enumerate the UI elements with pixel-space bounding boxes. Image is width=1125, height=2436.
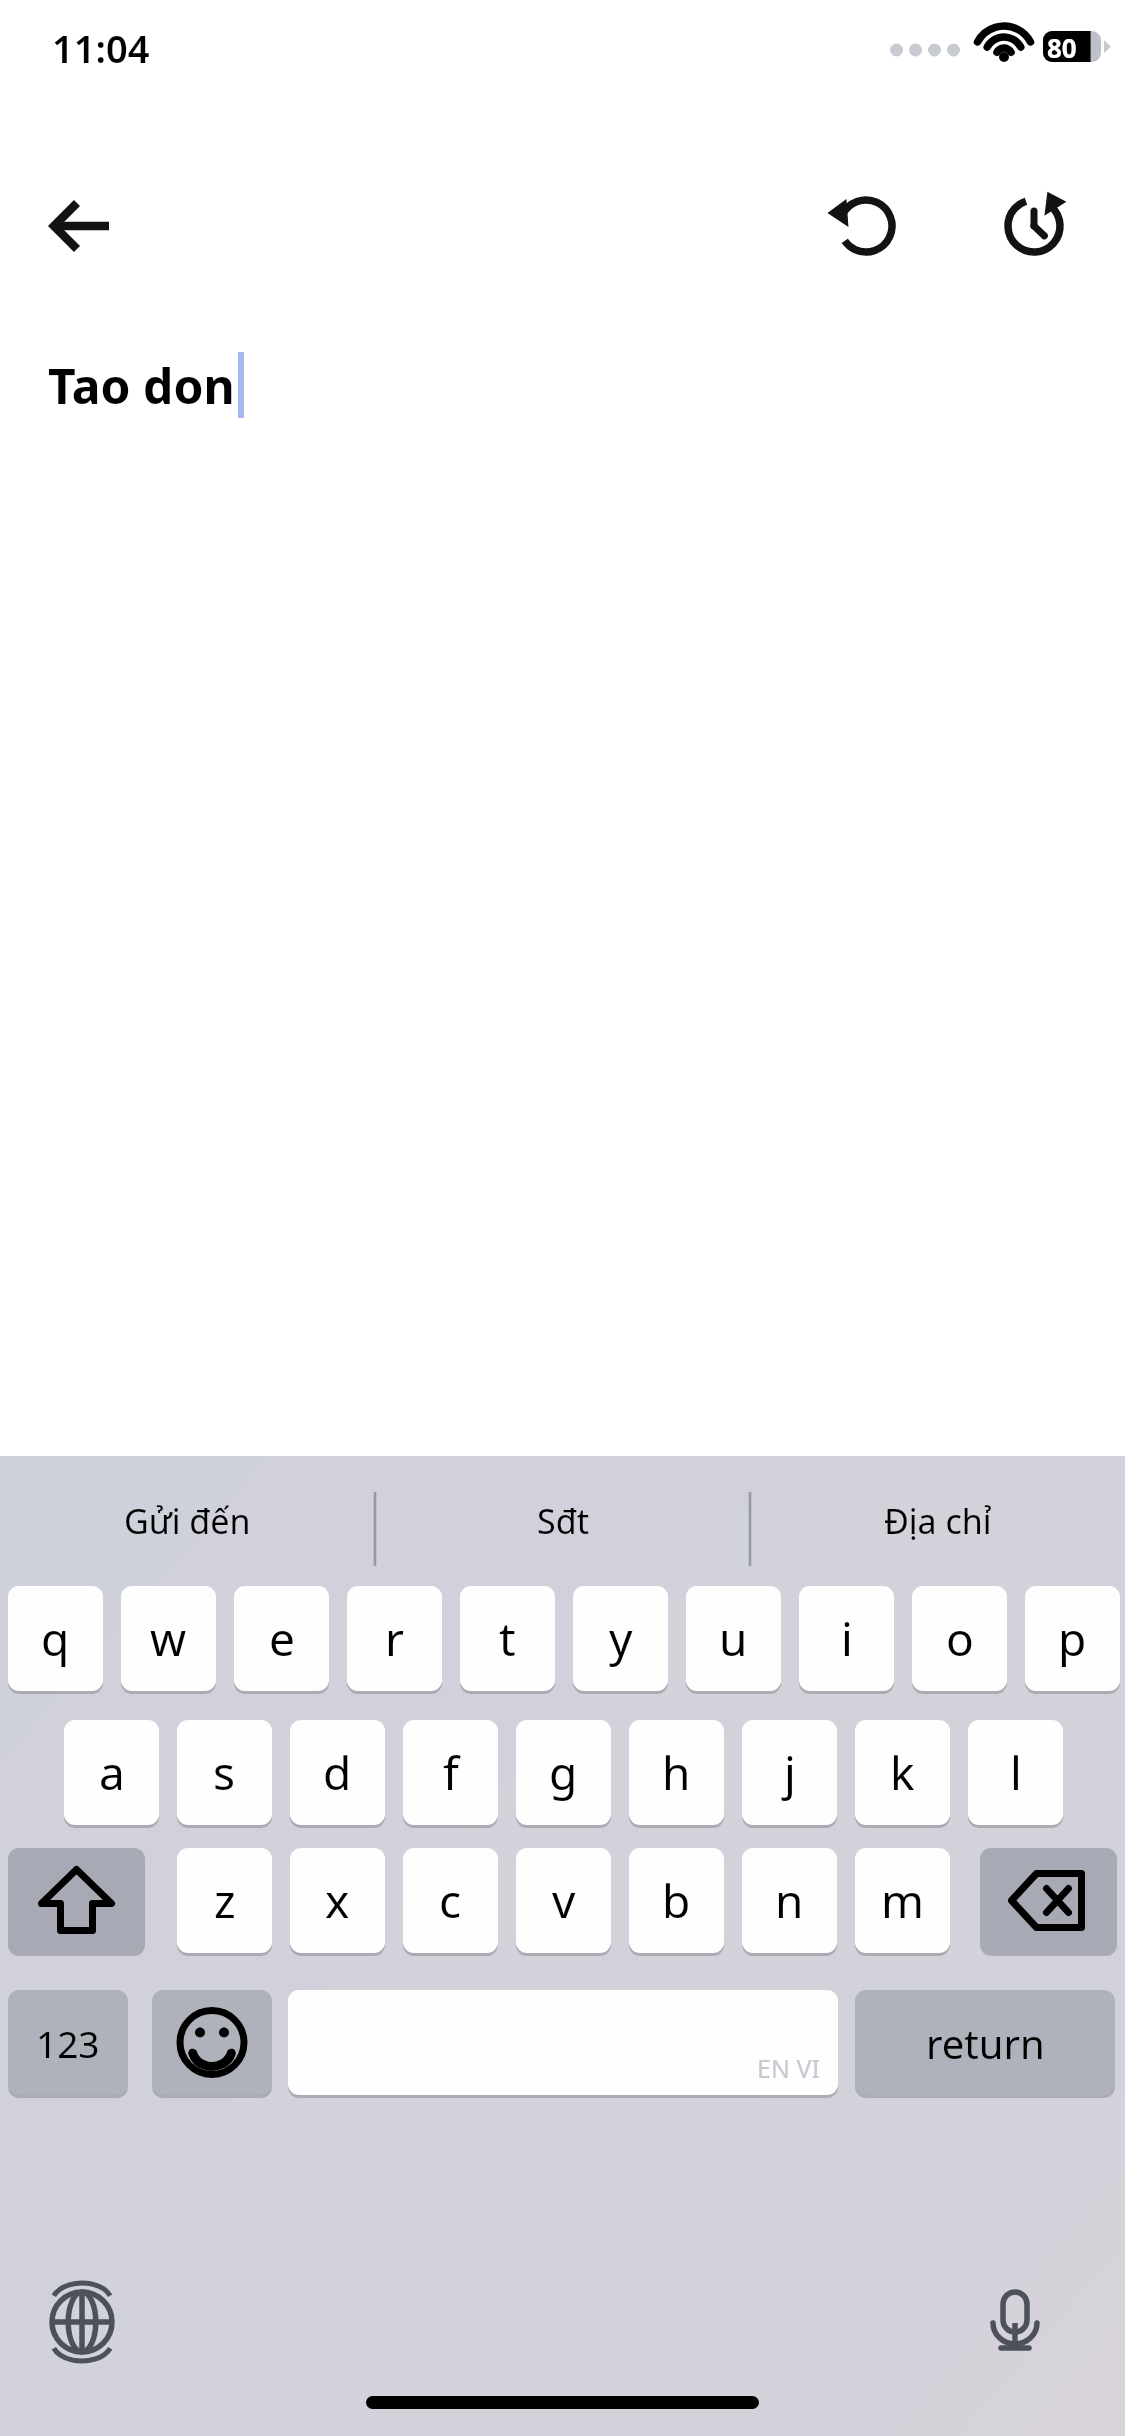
staticText: g	[549, 1741, 578, 1804]
button[interactable]: e	[234, 1586, 329, 1691]
button[interactable]: x	[290, 1848, 385, 1953]
staticText: y	[609, 1607, 633, 1670]
button[interactable]: m	[855, 1848, 950, 1953]
button[interactable]: n	[742, 1848, 837, 1953]
staticText: t	[499, 1607, 516, 1670]
staticText: k	[890, 1741, 915, 1804]
button[interactable]: Voice input	[965, 2272, 1065, 2372]
button[interactable]: c	[403, 1848, 498, 1953]
button[interactable]: z	[177, 1848, 272, 1953]
button[interactable]: s	[177, 1720, 272, 1825]
staticText: r	[385, 1607, 404, 1670]
staticText: e	[269, 1607, 295, 1670]
button[interactable]: d	[290, 1720, 385, 1825]
staticText: 80	[1047, 30, 1077, 65]
staticText: f	[443, 1741, 459, 1804]
staticText: Tao don	[48, 353, 235, 418]
staticText: 123	[36, 2018, 100, 2068]
staticText: m	[881, 1869, 925, 1932]
button[interactable]: f	[403, 1720, 498, 1825]
button[interactable]: g	[516, 1720, 611, 1825]
button[interactable]: l	[968, 1720, 1063, 1825]
staticText: a	[99, 1741, 125, 1804]
staticText: w	[150, 1607, 187, 1670]
button[interactable]: Backspace	[980, 1848, 1117, 1953]
button[interactable]: t	[460, 1586, 555, 1691]
button[interactable]: Gửi đến	[0, 1456, 375, 1586]
button[interactable]: h	[629, 1720, 724, 1825]
staticText: l	[1010, 1741, 1022, 1804]
staticText: return	[926, 2016, 1045, 2070]
button[interactable]: Undo	[810, 170, 922, 282]
button[interactable]: q	[8, 1586, 103, 1691]
staticText: h	[662, 1741, 691, 1804]
staticText: z	[214, 1869, 236, 1932]
button[interactable]: v	[516, 1848, 611, 1953]
staticText: v	[552, 1869, 576, 1932]
staticText: Địa chỉ	[884, 1498, 992, 1544]
button[interactable]: History	[978, 170, 1090, 282]
staticText: o	[946, 1607, 974, 1670]
button[interactable]: r	[347, 1586, 442, 1691]
button[interactable]: y	[573, 1586, 668, 1691]
staticText: EN VI	[757, 2051, 820, 2085]
button[interactable]: Emoji	[152, 1990, 272, 2095]
button[interactable]: Back	[31, 176, 131, 276]
button[interactable]: i	[799, 1586, 894, 1691]
button[interactable]: return	[855, 1990, 1115, 2095]
button[interactable]: Change keyboard language	[32, 2272, 132, 2372]
staticText: n	[775, 1869, 804, 1932]
staticText: c	[439, 1869, 462, 1932]
staticText: q	[41, 1607, 70, 1670]
button[interactable]: w	[121, 1586, 216, 1691]
staticText: s	[213, 1741, 236, 1804]
staticText: Gửi đến	[124, 1498, 251, 1544]
button[interactable]: u	[686, 1586, 781, 1691]
button[interactable]: Sđt	[375, 1456, 750, 1586]
staticText: Sđt	[537, 1498, 589, 1544]
button[interactable]: k	[855, 1720, 950, 1825]
button[interactable]: p	[1025, 1586, 1120, 1691]
staticText: d	[323, 1741, 352, 1804]
button[interactable]: a	[64, 1720, 159, 1825]
staticText: u	[719, 1607, 748, 1670]
button[interactable]: Shift	[8, 1848, 145, 1953]
staticText: x	[325, 1869, 350, 1932]
staticText: i	[841, 1607, 853, 1670]
staticText: j	[784, 1741, 796, 1804]
staticText: 11:04	[52, 22, 150, 74]
button[interactable]: Địa chỉ	[750, 1456, 1125, 1586]
staticText: b	[662, 1869, 691, 1932]
staticText: p	[1058, 1607, 1087, 1670]
button[interactable]: o	[912, 1586, 1007, 1691]
button[interactable]: 123	[8, 1990, 128, 2095]
button[interactable]: j	[742, 1720, 837, 1825]
button[interactable]: b	[629, 1848, 724, 1953]
button[interactable]: EN VI	[288, 1990, 838, 2095]
